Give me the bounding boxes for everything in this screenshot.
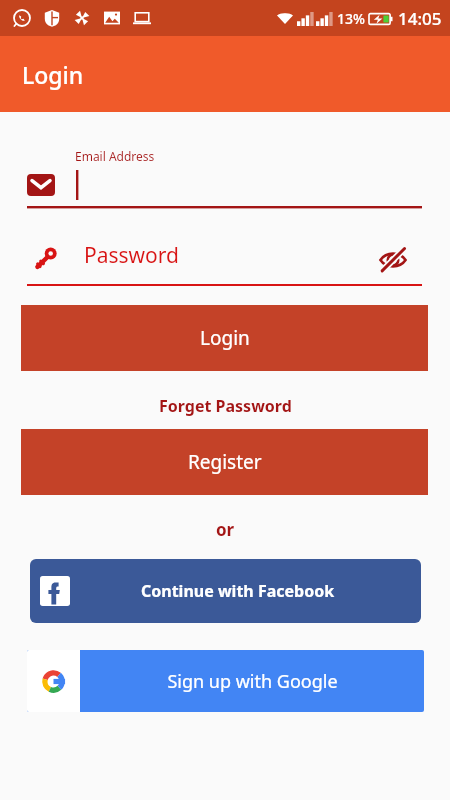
staticText: Sign up with Google — [167, 669, 338, 694]
staticText: Continue with Facebook — [141, 580, 335, 602]
button[interactable]: Show password — [376, 243, 410, 277]
staticText: Password — [84, 241, 179, 270]
staticText: Register — [188, 449, 262, 475]
button[interactable]: Register — [21, 429, 428, 495]
button[interactable]: Forget Password — [149, 389, 302, 423]
staticText: Login — [200, 325, 250, 351]
staticText: or — [216, 518, 235, 541]
button[interactable]: Sign up with Google — [27, 650, 424, 712]
staticText: 13% — [337, 9, 365, 28]
button[interactable]: Login — [21, 305, 428, 371]
staticText: Forget Password — [159, 395, 292, 417]
staticText: Login — [22, 59, 84, 90]
staticText: 14:05 — [398, 7, 442, 30]
staticText: Email Address — [75, 148, 155, 164]
button[interactable]: Continue with Facebook — [30, 559, 421, 623]
